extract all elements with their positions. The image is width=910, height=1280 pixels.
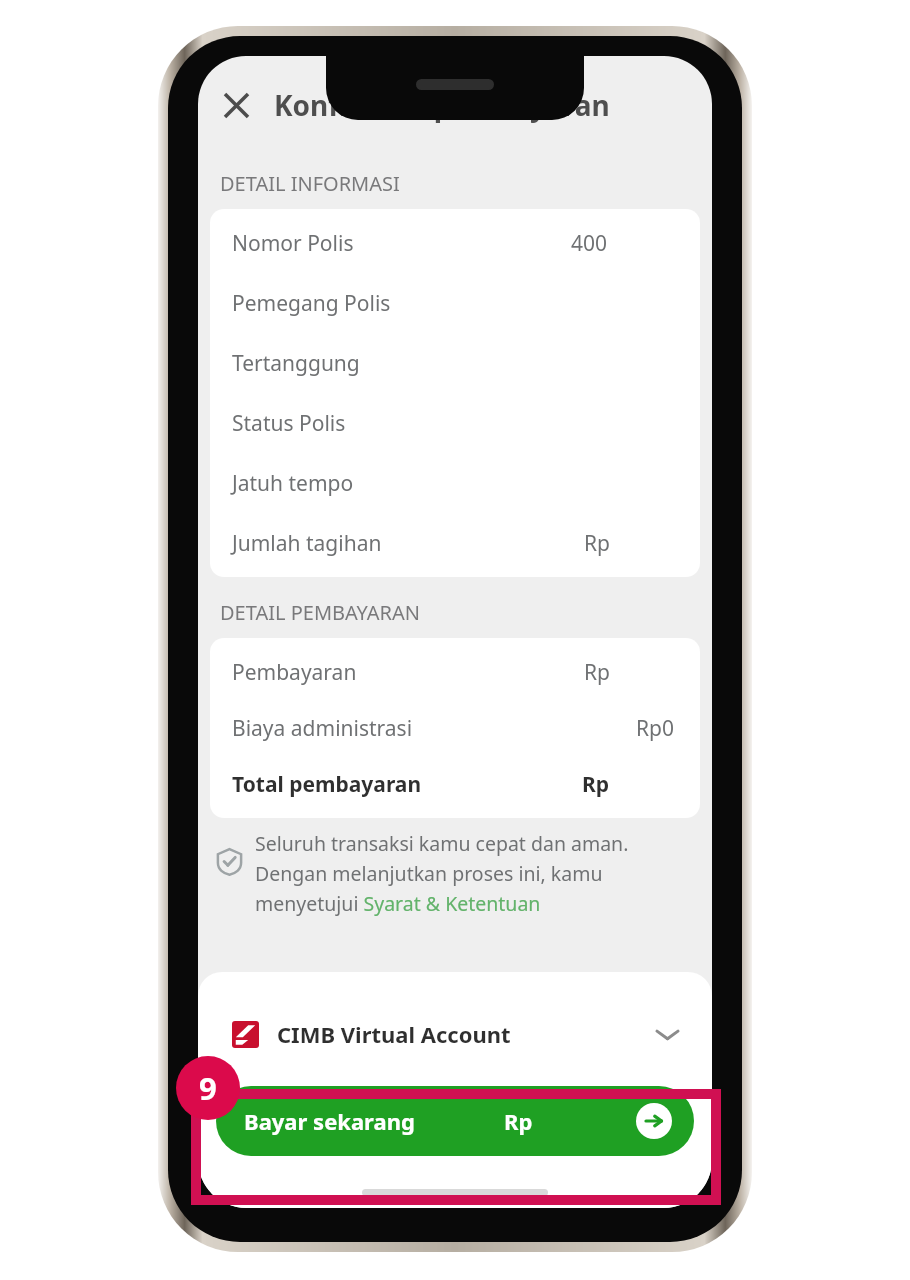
- staticText: 9: [199, 1067, 217, 1109]
- button[interactable]: Close: [212, 81, 260, 129]
- staticText: Tertanggung: [232, 349, 360, 378]
- staticText: Rp: [584, 658, 610, 687]
- staticText: Status Polis: [232, 409, 346, 438]
- staticText: Total pembayaran: [232, 770, 422, 799]
- staticText: Rp: [584, 529, 610, 558]
- staticText: Konfirmasi pembayaran: [274, 86, 610, 124]
- staticText: CIMB Virtual Account: [277, 1019, 511, 1049]
- staticText: Bayar sekarang: [244, 1106, 415, 1136]
- staticText: Pemegang Polis: [232, 289, 391, 318]
- staticText: Rp: [582, 770, 610, 799]
- staticText: Rp: [504, 1106, 533, 1136]
- staticText: Rp0: [636, 714, 674, 743]
- staticText: DETAIL INFORMASI: [220, 170, 400, 197]
- staticText: DETAIL PEMBAYARAN: [220, 599, 420, 626]
- staticText: Pembayaran: [232, 658, 357, 687]
- staticText: Biaya administrasi: [232, 714, 413, 743]
- button[interactable]: Bayar sekarang: [216, 1086, 694, 1156]
- staticText: Nomor Polis: [232, 229, 354, 258]
- staticText: Seluruh transaksi kamu cepat dan aman. D…: [255, 830, 678, 916]
- button[interactable]: CIMB Virtual Account: [214, 998, 696, 1070]
- staticText: Jumlah tagihan: [232, 529, 382, 558]
- staticText: 400: [571, 229, 608, 258]
- staticText: Jatuh tempo: [232, 469, 354, 498]
